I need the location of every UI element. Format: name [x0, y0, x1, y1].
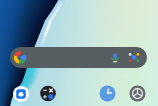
button[interactable]: Search	[10, 47, 147, 68]
